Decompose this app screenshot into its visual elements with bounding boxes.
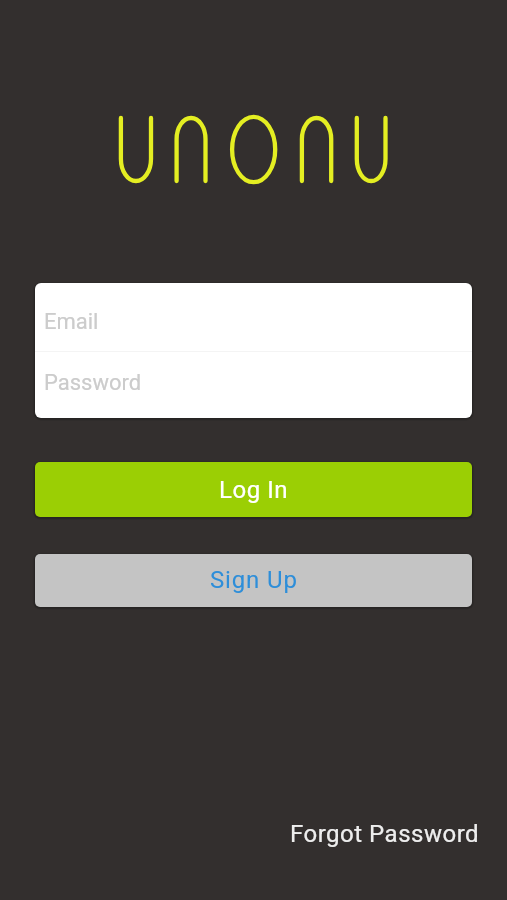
staticText: Log In <box>219 476 289 504</box>
staticText: Forgot Password <box>290 820 480 848</box>
button[interactable]: Log In <box>35 462 472 517</box>
staticText: Sign Up <box>210 566 298 594</box>
button[interactable]: Forgot Password <box>278 812 484 856</box>
button[interactable]: Password <box>35 352 472 418</box>
button[interactable]: Email <box>35 283 472 351</box>
staticText: Email <box>44 309 99 335</box>
button[interactable]: Sign Up <box>35 554 472 607</box>
staticText: Password <box>44 370 142 396</box>
